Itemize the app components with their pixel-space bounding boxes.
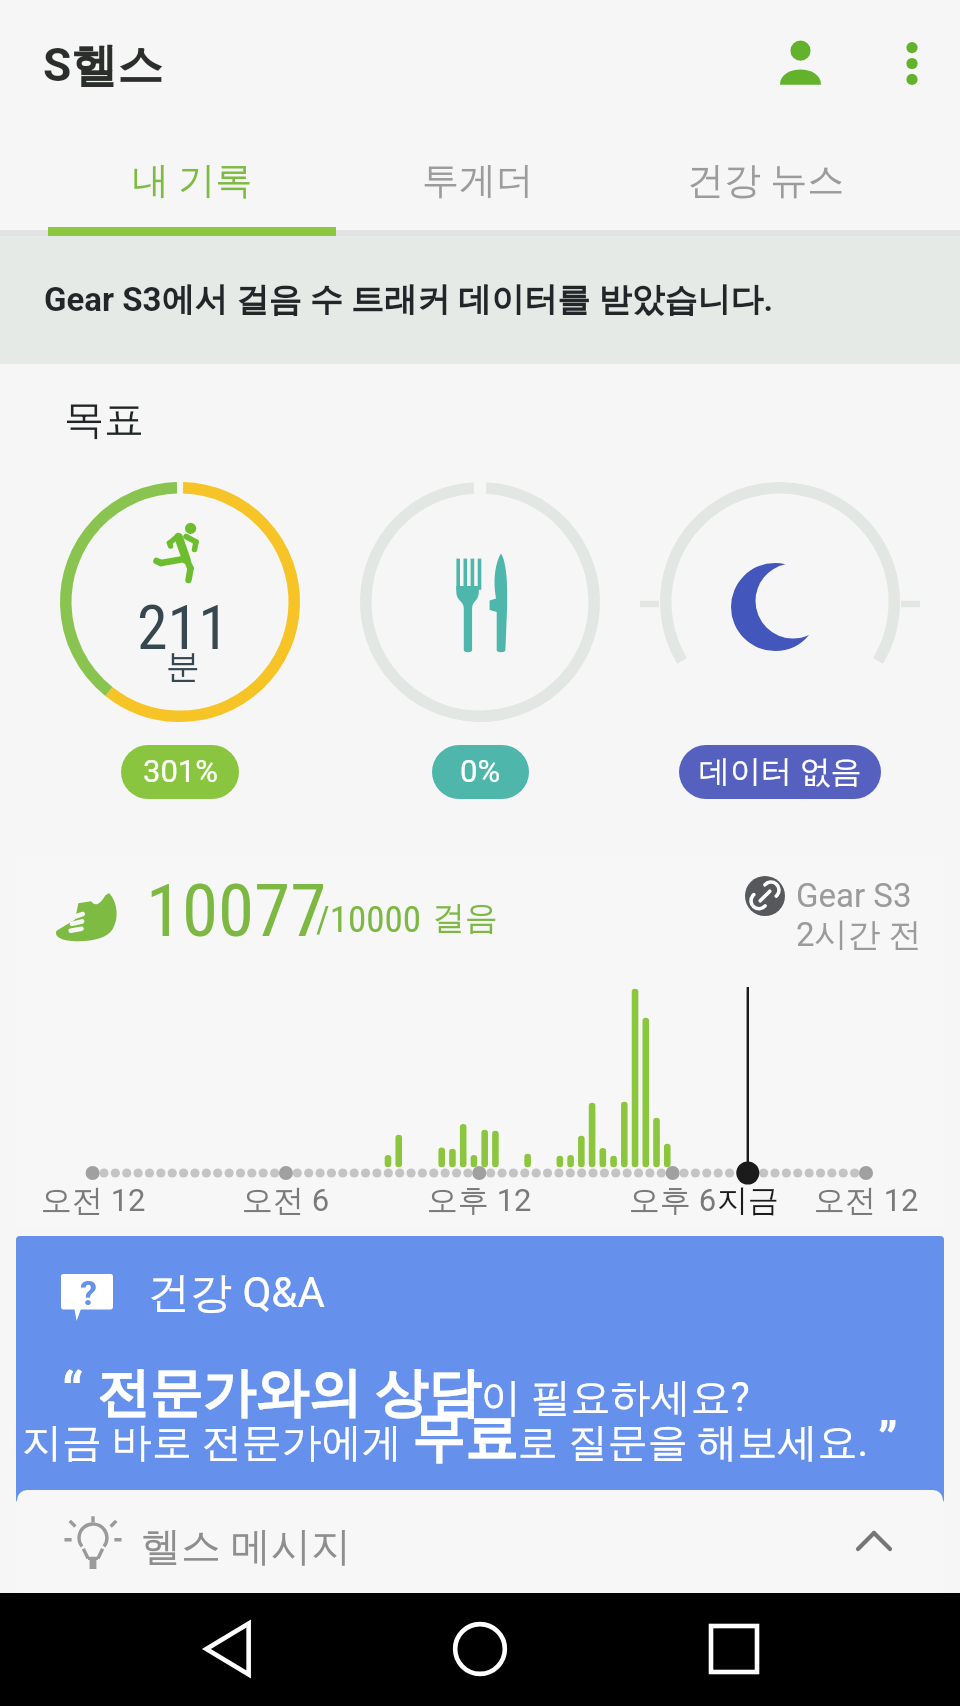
button[interactable]: 10077 (17, 857, 943, 1228)
other: Expand health messages (856, 1531, 892, 1551)
staticText: 211 (137, 591, 229, 664)
staticText: 지금 (717, 1181, 779, 1220)
staticText: 목표 (64, 394, 144, 444)
staticText: 오전 6 (242, 1181, 330, 1220)
staticText: 분 (166, 645, 200, 688)
staticText: 오전 12 (814, 1181, 919, 1220)
staticText: /10000 (316, 898, 422, 941)
button[interactable]: 데이터 없음 (679, 745, 881, 799)
staticText: Gear S3 (796, 876, 912, 915)
staticText: 걸음 (432, 897, 498, 939)
staticText: 헬스 메시지 (141, 1521, 351, 1571)
staticText: Gear S3에서 걸음 수 트래커 데이터를 받았습니다. (44, 279, 774, 321)
staticText: 내 기록 (132, 157, 253, 204)
button[interactable]: 데이터 없음 (630, 464, 930, 809)
staticText: 오전 12 (41, 1181, 146, 1220)
staticText: 데이터 없음 (699, 752, 862, 791)
button[interactable]: 211 (30, 464, 330, 809)
staticText: 0% (460, 753, 501, 789)
staticText: 301% (143, 753, 218, 789)
staticText: 오후 12 (427, 1181, 532, 1220)
button[interactable]: Profile (756, 19, 844, 107)
staticText: 투게더 (422, 157, 533, 204)
staticText: S헬스 (43, 37, 164, 95)
button[interactable]: Recent apps (678, 1593, 790, 1705)
button[interactable]: 건강 뉴스 (626, 125, 906, 236)
button[interactable]: 301% (121, 745, 239, 799)
button[interactable]: 투게더 (357, 125, 597, 236)
staticText: “ 전문가와의 상담이 필요하세요? (62, 1360, 750, 1427)
staticText: ? (80, 1273, 97, 1313)
staticText: 건강 Q&A (148, 1267, 325, 1320)
button[interactable]: Back (172, 1593, 284, 1705)
button[interactable]: 내 기록 (48, 125, 336, 236)
staticText: 건강 뉴스 (687, 157, 845, 204)
staticText: 2시간 전 (796, 914, 922, 956)
button[interactable]: 0% (330, 464, 630, 809)
button[interactable]: 0% (432, 745, 529, 799)
button[interactable]: ? (16, 1236, 944, 1503)
button[interactable]: Home (424, 1593, 536, 1705)
staticText: 10077 (146, 868, 327, 954)
staticText: 오후 6 (629, 1181, 717, 1220)
button[interactable]: 헬스 메시지 (17, 1490, 943, 1593)
staticText: 지금 바로 전문가에게 무료로 질문을 해보세요. ” (22, 1405, 898, 1472)
button[interactable]: Gear S3에서 걸음 수 트래커 데이터를 받았습니다. (0, 236, 960, 364)
button[interactable]: More options (868, 19, 956, 107)
